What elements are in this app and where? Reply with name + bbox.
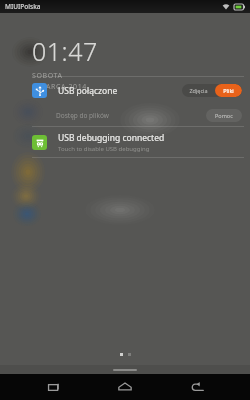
staticText: Touch to disable USB debugging bbox=[58, 145, 150, 153]
staticText: USB debugging connected bbox=[58, 132, 165, 144]
button[interactable]: USB debugging connected bbox=[0, 127, 250, 157]
staticText: Dostęp do plików bbox=[56, 111, 109, 120]
staticText: MIUIPolska bbox=[5, 2, 41, 11]
staticText: Pomoc bbox=[215, 112, 233, 119]
button[interactable]: USB połączone bbox=[0, 77, 250, 126]
button[interactable]: Recents bbox=[33, 374, 73, 400]
button[interactable]: Back bbox=[178, 374, 218, 400]
button[interactable]: Zdjęcia bbox=[182, 84, 215, 97]
staticText: Zdjęcia bbox=[189, 87, 208, 94]
staticText: SOBOTA bbox=[32, 71, 63, 81]
button[interactable]: Pomoc bbox=[206, 109, 242, 122]
button[interactable]: Pliki bbox=[215, 84, 242, 97]
staticText: Pliki bbox=[223, 87, 234, 94]
staticText: 1 MARCA 2014 bbox=[32, 82, 87, 92]
button[interactable]: Home bbox=[105, 374, 145, 400]
staticText: USB połączone bbox=[58, 85, 118, 97]
staticText: 01:47 bbox=[32, 34, 98, 68]
